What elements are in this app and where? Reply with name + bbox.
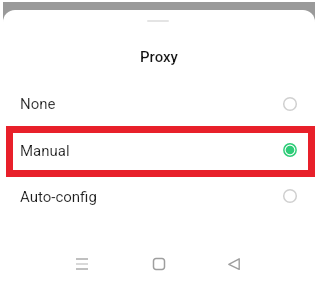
staticText: Manual bbox=[20, 142, 70, 160]
staticText: Auto-config bbox=[20, 188, 97, 206]
button[interactable]: Home bbox=[141, 246, 177, 281]
button[interactable]: Auto-config bbox=[0, 176, 326, 218]
staticText: Proxy bbox=[140, 48, 178, 66]
button[interactable]: Recent apps bbox=[64, 246, 100, 281]
button[interactable]: Manual bbox=[0, 130, 326, 172]
button[interactable]: None bbox=[0, 83, 326, 125]
button[interactable]: Back bbox=[216, 246, 252, 281]
staticText: None bbox=[20, 95, 56, 113]
